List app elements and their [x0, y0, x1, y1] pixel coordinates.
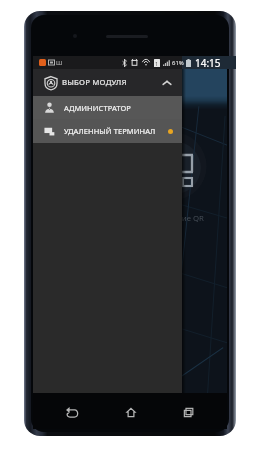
button[interactable]: Recents: [175, 402, 202, 422]
button[interactable]: УДАЛЕННЫЙ ТЕРМИНАЛ: [33, 119, 182, 143]
staticText: 61%: [172, 59, 184, 67]
staticText: УДАЛЕННЫЙ ТЕРМИНАЛ: [64, 126, 156, 136]
staticText: ние QR: [177, 213, 204, 224]
button[interactable]: Home: [117, 402, 144, 422]
staticText: 14:15: [195, 56, 221, 69]
button[interactable]: Back: [58, 402, 85, 422]
button[interactable]: ВЫБОР МОДУЛЯ: [33, 69, 182, 96]
staticText: АДМИНИСТРАТОР: [64, 103, 131, 113]
staticText: Ш: [56, 59, 63, 67]
button[interactable]: АДМИНИСТРАТОР: [33, 96, 182, 119]
staticText: ВЫБОР МОДУЛЯ: [62, 77, 127, 88]
staticText: 1: [155, 60, 159, 67]
